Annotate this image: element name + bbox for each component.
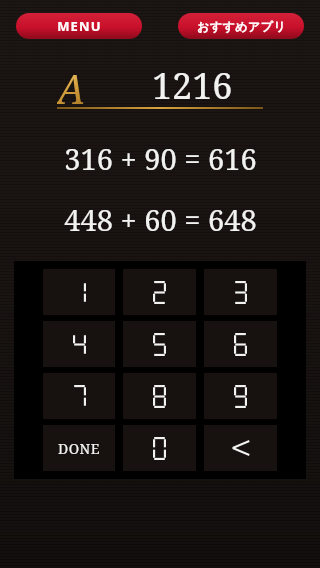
staticText: 1216 (152, 61, 233, 105)
staticText: MENU (57, 17, 102, 35)
staticText: A (57, 61, 86, 105)
staticText: 316 + 90 = 616 (64, 139, 257, 178)
button[interactable]: おすすめアプリ (178, 13, 304, 39)
button[interactable]: Digit 7 (43, 373, 115, 419)
button[interactable]: Digit 3 (204, 269, 277, 315)
staticText: おすすめアプリ (197, 19, 286, 34)
button[interactable]: Digit 4 (43, 321, 115, 367)
button[interactable]: Digit 2 (123, 269, 196, 315)
button[interactable]: Digit 1 (43, 269, 115, 315)
staticText: DONE (58, 439, 100, 458)
button[interactable]: MENU (16, 13, 142, 39)
button[interactable]: Digit 0 (123, 425, 196, 471)
button[interactable]: Backspace (204, 425, 277, 471)
button[interactable]: DONE (43, 425, 115, 471)
button[interactable]: Digit 9 (204, 373, 277, 419)
button[interactable]: Digit 5 (123, 321, 196, 367)
button[interactable]: Digit 6 (204, 321, 277, 367)
button[interactable]: Digit 8 (123, 373, 196, 419)
staticText: 448 + 60 = 648 (64, 200, 257, 239)
